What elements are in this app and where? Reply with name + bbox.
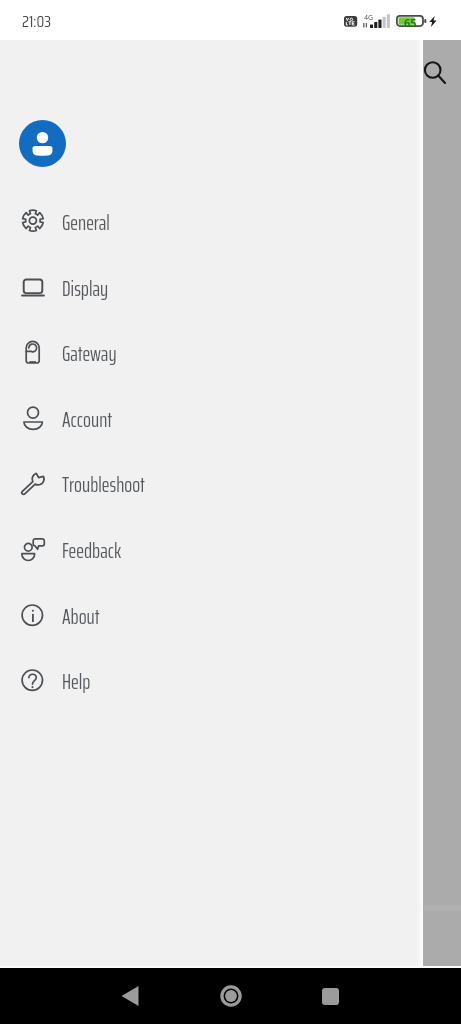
button[interactable]: Search: [423, 58, 447, 82]
staticText: Display: [62, 272, 109, 305]
button[interactable]: Troubleshoot: [0, 451, 423, 517]
button[interactable]: Profile: [19, 120, 66, 167]
button[interactable]: Display: [0, 255, 423, 321]
staticText: General: [62, 206, 110, 239]
staticText: About: [62, 600, 100, 633]
button[interactable]: About: [0, 583, 423, 649]
staticText: Feedback: [62, 534, 122, 567]
button[interactable]: Help: [0, 648, 423, 714]
staticText: Account: [62, 403, 113, 436]
staticText: 65: [404, 15, 417, 30]
staticText: Troubleshoot: [62, 468, 145, 501]
button[interactable]: Account: [0, 386, 423, 452]
button[interactable]: General: [0, 189, 423, 255]
button[interactable]: Recent apps: [304, 970, 356, 1022]
staticText: 21:03: [22, 9, 51, 34]
staticText: Help: [62, 665, 91, 698]
staticText: Gateway: [62, 337, 117, 370]
button[interactable]: Gateway: [0, 320, 423, 386]
button[interactable]: Home: [205, 970, 257, 1022]
button[interactable]: Back: [104, 970, 156, 1022]
staticText: 4G: [364, 13, 374, 23]
button[interactable]: Feedback: [0, 517, 423, 583]
